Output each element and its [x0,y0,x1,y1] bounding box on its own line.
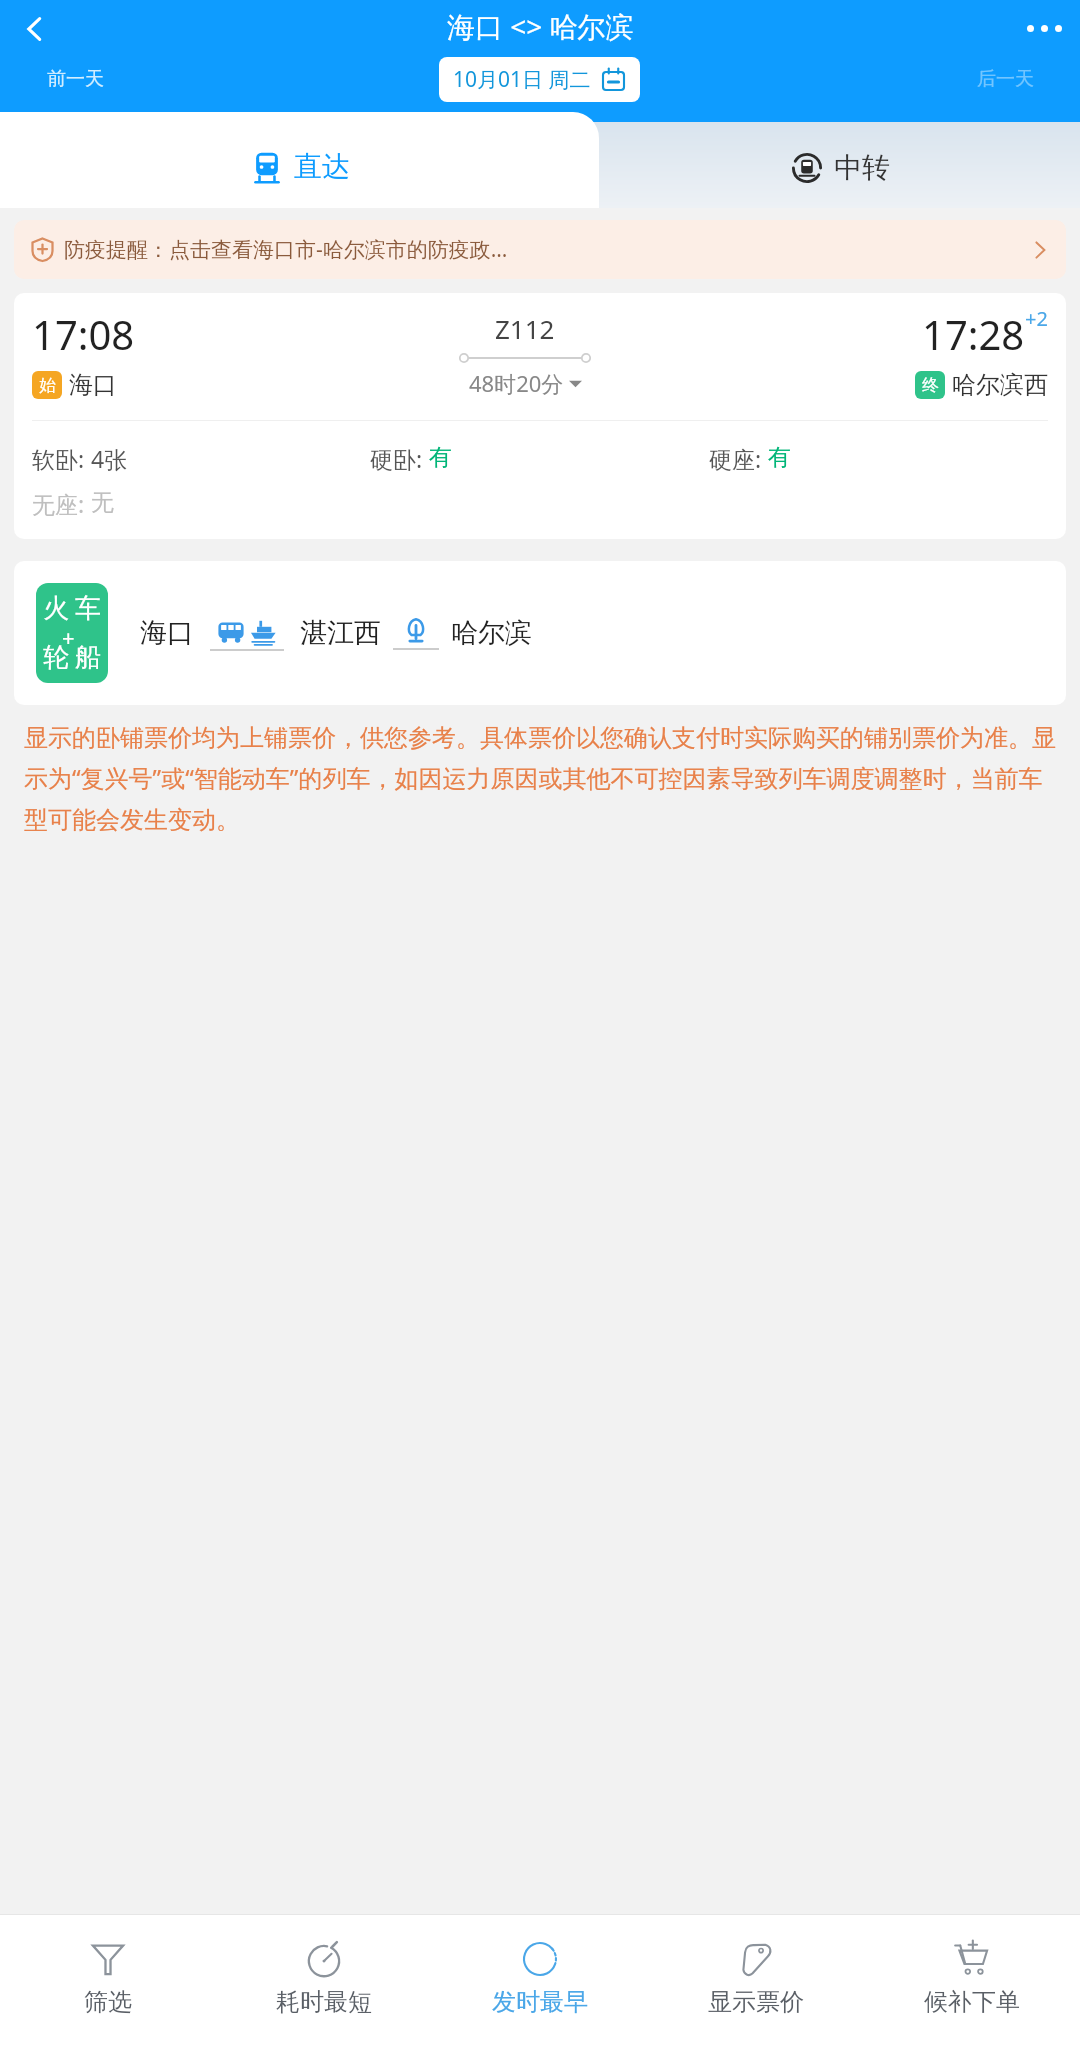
button[interactable]: 耗时最短 [216,1915,432,2040]
staticText: 发时最早 [492,1987,588,2017]
staticText: 车 [75,592,101,625]
button[interactable]: 候补下单 [864,1915,1080,2040]
staticText: 始 [39,375,56,396]
staticText: 海口 [69,370,117,400]
staticText: 有 [429,443,452,472]
staticText: 硬座: [709,443,768,474]
staticText: 船 [75,641,101,674]
button[interactable]: 防疫提醒：点击查看海口市-哈尔滨市的防疫政… [14,220,1066,279]
staticText: +2 [1025,305,1048,332]
staticText: 4张 [91,443,128,474]
button[interactable]: 后一天 [930,52,1080,106]
staticText: 10月01日 周二 [453,65,591,94]
staticText: 有 [768,443,791,472]
staticText: 轮 [43,641,69,674]
button[interactable]: More options [1016,0,1072,56]
button[interactable]: 火 [14,561,1066,705]
staticText: 候补下单 [924,1987,1020,2017]
staticText: 无 [91,488,114,517]
staticText: 17:08 [32,307,135,361]
staticText: 海口 [140,616,194,650]
staticText: 后一天 [977,67,1034,91]
staticText: + [62,622,75,652]
staticText: Z112 [495,311,555,346]
staticText: 48时20分 [469,368,564,398]
staticText: 直达 [294,149,350,184]
staticText: 耗时最短 [276,1987,372,2017]
staticText: 前一天 [47,67,104,91]
button[interactable]: 筛选 [0,1915,216,2040]
staticText: 海口 <> 哈尔滨 [447,7,634,45]
staticText: 显示票价 [708,1987,804,2017]
staticText: 显示的卧铺票价均为上铺票价，供您参考。具体票价以您确认支付时实际购买的铺别票价为… [24,723,1056,835]
button[interactable]: 发时最早 [432,1915,648,2040]
staticText: 哈尔滨 [451,616,532,650]
staticText: 防疫提醒：点击查看海口市-哈尔滨市的防疫政… [64,235,508,264]
button[interactable]: Back [8,2,62,56]
staticText: 软卧: [32,443,91,474]
button[interactable]: 10月01日 周二 [439,57,640,102]
staticText: 筛选 [84,1987,132,2017]
staticText: 哈尔滨西 [952,370,1048,400]
staticText: 终 [922,375,939,396]
staticText: 硬卧: [370,443,429,474]
button[interactable]: 显示票价 [648,1915,864,2040]
button[interactable]: 17:08 [14,293,1066,539]
button[interactable]: 前一天 [0,52,150,106]
staticText: 17:28 [922,307,1025,361]
button[interactable]: 中转 [599,122,1080,208]
staticText: 火 [43,592,69,625]
staticText: 无座: [32,488,91,519]
button[interactable]: 直达 [0,112,599,208]
staticText: 湛江西 [300,616,381,650]
staticText: 中转 [834,150,890,185]
